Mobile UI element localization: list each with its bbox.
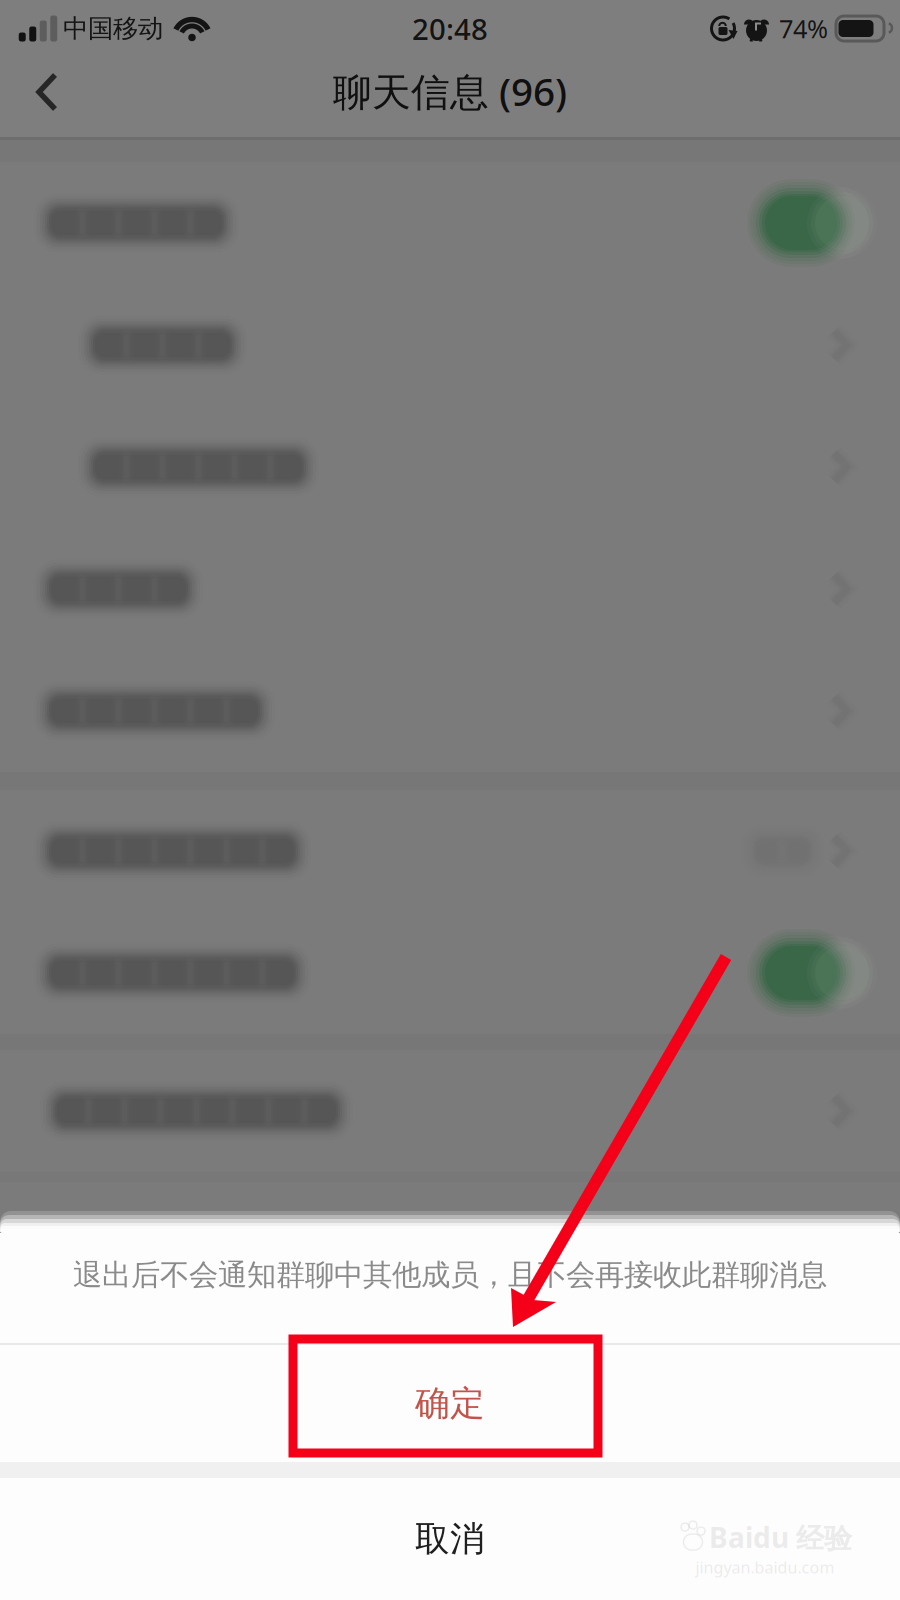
button[interactable]: Back	[0, 57, 88, 137]
button[interactable]: 确定	[0, 1345, 900, 1462]
staticText: jingyan.baidu.com	[695, 1557, 834, 1578]
staticText: Baidu 经验	[709, 1518, 852, 1556]
staticText: 聊天信息 (96)	[333, 65, 567, 117]
staticText: 取消	[415, 1518, 485, 1560]
staticText: 20:48	[412, 9, 488, 48]
staticText: 中国移动	[63, 13, 163, 44]
button[interactable]: 取消	[0, 1478, 900, 1600]
staticText: 确定	[415, 1382, 485, 1425]
staticText: 74%	[779, 12, 828, 45]
staticText: 退出后不会通知群聊中其他成员，且不会再接收此群聊消息	[73, 1257, 827, 1293]
